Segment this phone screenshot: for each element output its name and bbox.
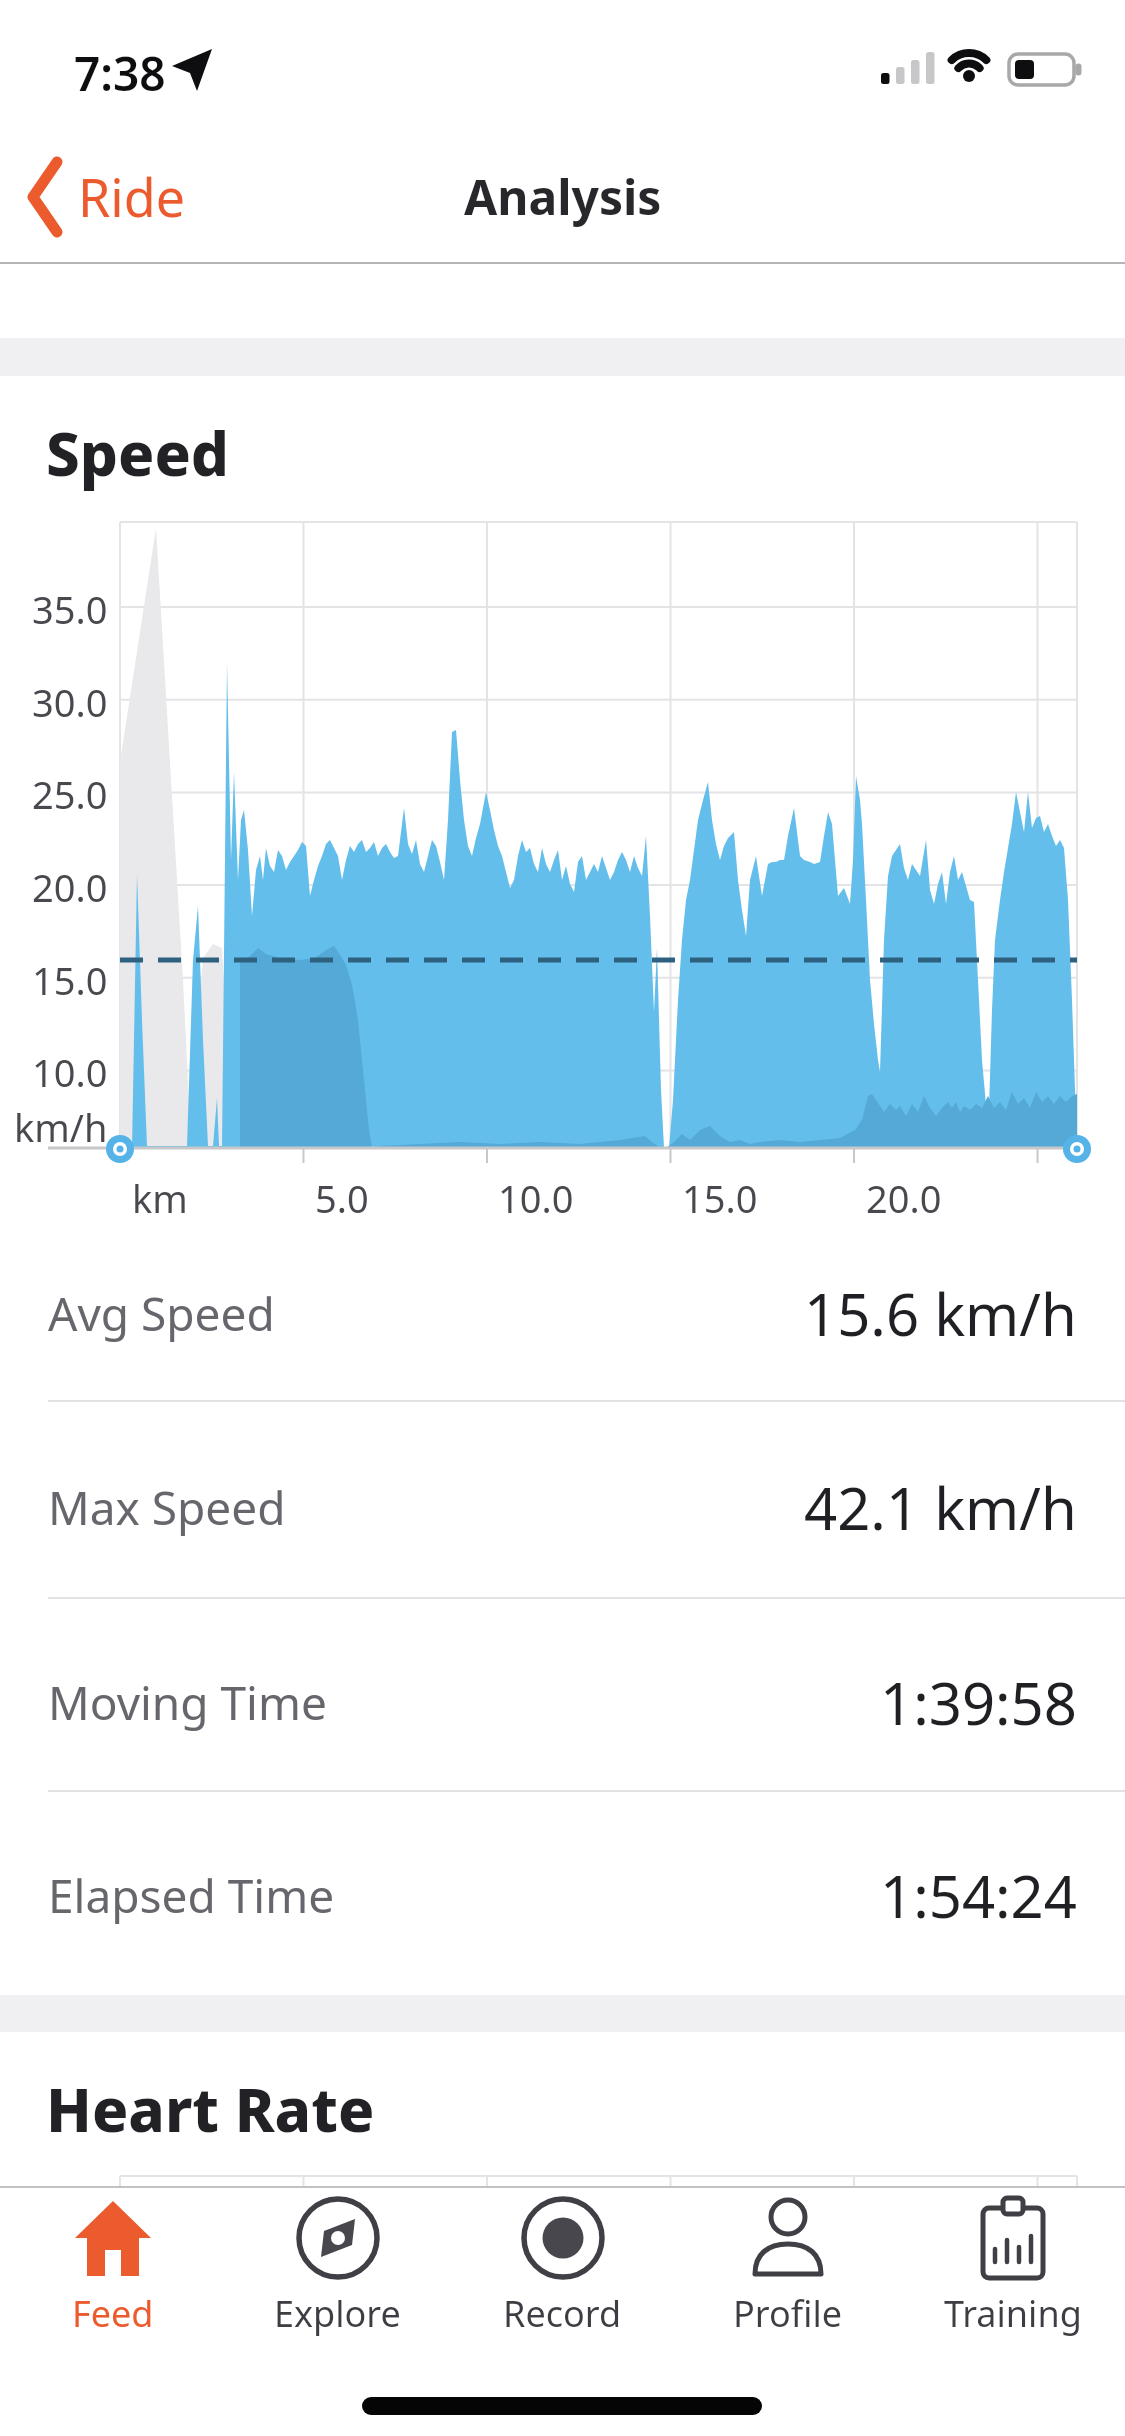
staticText: Feed [72, 2289, 154, 2338]
staticText: 1:39:58 [880, 1663, 1077, 1742]
staticText: Heart Rate [46, 2068, 375, 2150]
staticText: 20.0 [866, 1172, 942, 1224]
staticText: 15.0 [32, 954, 108, 1006]
staticText: Speed [46, 412, 230, 494]
staticText: 15.6 km/h [804, 1274, 1077, 1353]
staticText: 1:54:24 [880, 1856, 1077, 1935]
button[interactable]: Explore [225, 2188, 450, 2338]
staticText: 42.1 km/h [804, 1468, 1077, 1547]
button[interactable]: Record [450, 2188, 675, 2338]
button[interactable]: Ride [20, 148, 210, 244]
staticText: 35.0 [32, 583, 108, 635]
staticText: Analysis [464, 164, 662, 229]
button[interactable]: Feed [0, 2188, 225, 2338]
staticText: Avg Speed [48, 1282, 275, 1345]
staticText: km [132, 1172, 188, 1224]
staticText: Ride [78, 161, 186, 232]
staticText: Elapsed Time [48, 1864, 335, 1927]
button[interactable]: Training [900, 2188, 1125, 2338]
staticText: Record [503, 2289, 622, 2338]
staticText: Max Speed [48, 1476, 286, 1539]
staticText: 10.0 [32, 1046, 108, 1098]
staticText: Explore [274, 2289, 401, 2338]
staticText: 20.0 [32, 861, 108, 913]
staticText: km/h [14, 1101, 108, 1153]
staticText: 15.0 [682, 1172, 758, 1224]
staticText: Profile [733, 2289, 842, 2338]
staticText: 25.0 [32, 768, 108, 820]
staticText: Training [944, 2289, 1082, 2338]
staticText: Moving Time [48, 1671, 327, 1734]
button[interactable]: Profile [675, 2188, 900, 2338]
staticText: 5.0 [315, 1172, 369, 1224]
staticText: 7:38 [74, 42, 166, 105]
staticText: 30.0 [32, 676, 108, 728]
staticText: 10.0 [498, 1172, 574, 1224]
